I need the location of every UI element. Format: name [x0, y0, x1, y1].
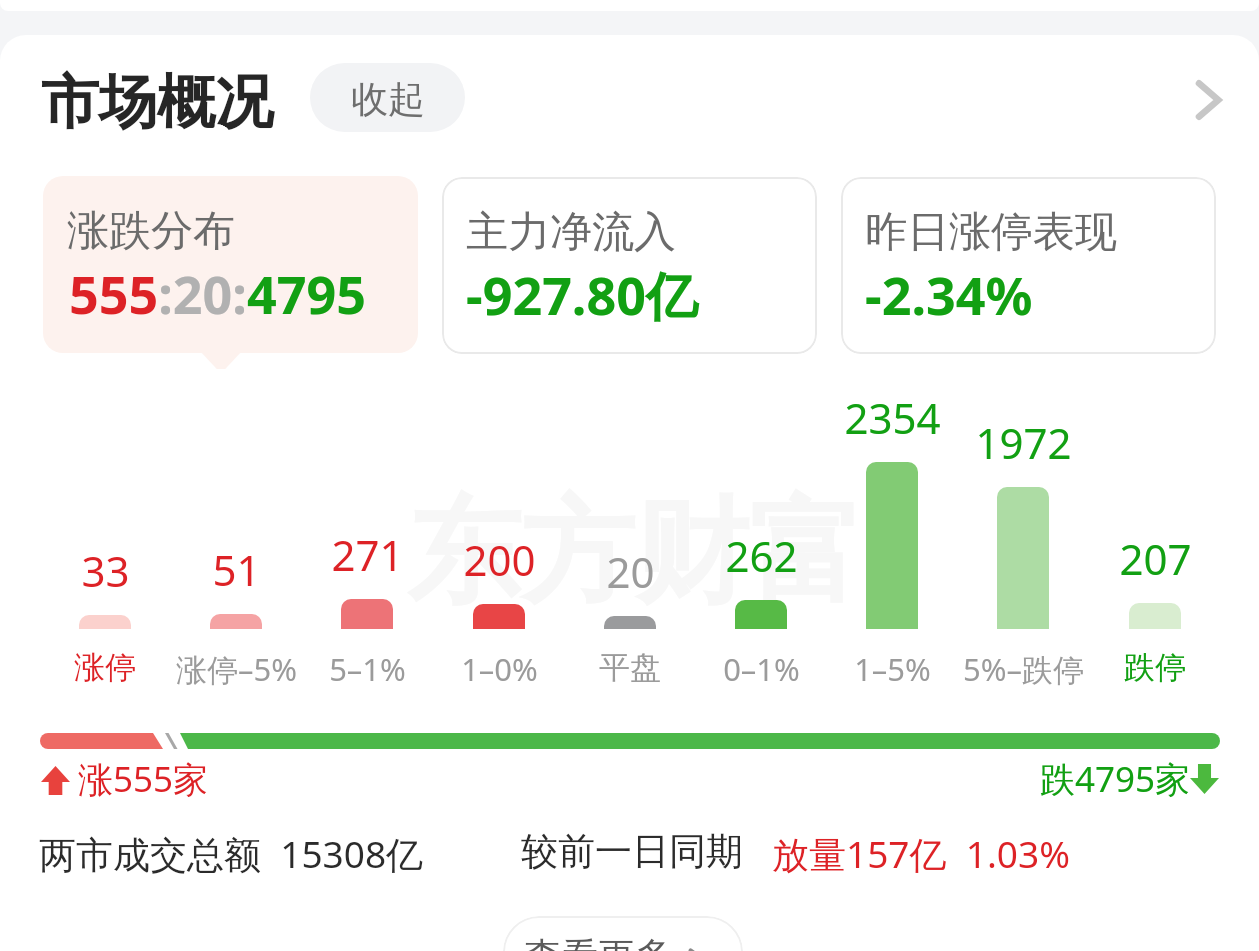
staticText: 跌4795家 — [1040, 755, 1191, 803]
button[interactable]: 查看更多 — [503, 916, 743, 951]
staticText: 平盘 — [599, 648, 661, 687]
staticText: 放量157亿 1.03% — [772, 828, 1070, 879]
staticText: 涨停–5% — [176, 648, 297, 690]
staticText: 0–1% — [723, 648, 800, 690]
staticText: 20 — [606, 543, 655, 600]
staticText: 涨停 — [74, 648, 136, 687]
staticText: 5%–跌停 — [963, 648, 1084, 690]
staticText: 涨555家 — [78, 755, 209, 803]
staticText: -927.80亿 — [466, 259, 698, 330]
staticText: 200 — [463, 531, 536, 588]
staticText: 1–5% — [854, 648, 931, 690]
staticText: 5–1% — [329, 648, 406, 690]
staticText: 涨跌分布 — [67, 205, 235, 258]
button[interactable]: 昨日涨停表现 — [841, 177, 1216, 354]
staticText: 1972 — [975, 414, 1072, 471]
staticText: 跌停 — [1124, 648, 1186, 687]
staticText: 两市成交总额 15308亿 — [39, 828, 424, 879]
staticText: 555:20:4795 — [69, 258, 366, 329]
staticText: 收起 — [351, 76, 425, 123]
staticText: 207 — [1119, 530, 1192, 587]
button[interactable]: 涨跌分布 — [43, 176, 418, 353]
button[interactable]: 收起 — [310, 63, 465, 132]
staticText: 262 — [725, 527, 798, 584]
staticText: 市场概况 — [41, 66, 273, 139]
staticText: 271 — [331, 526, 404, 583]
staticText: 主力净流入 — [466, 206, 676, 259]
staticText: 1–0% — [461, 648, 538, 690]
staticText: -2.34% — [865, 259, 1033, 330]
button[interactable]: Expand market overview — [1176, 70, 1236, 130]
staticText: 较前一日同期 — [521, 828, 743, 875]
button[interactable]: 主力净流入 — [442, 177, 817, 354]
staticText: 33 — [81, 542, 130, 599]
staticText: 51 — [212, 541, 261, 598]
staticText: 东方财富 — [407, 481, 863, 625]
staticText: 查看更多 — [524, 933, 672, 951]
staticText: 昨日涨停表现 — [865, 206, 1117, 259]
staticText: 2354 — [844, 389, 941, 446]
